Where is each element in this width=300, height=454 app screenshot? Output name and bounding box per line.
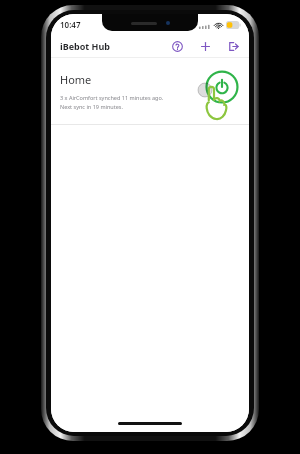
staticText: 10:47 — [60, 19, 81, 30]
button[interactable]: Add — [194, 35, 216, 57]
staticText: iBebot Hub — [60, 40, 111, 52]
staticText: Next sync in 19 minutes. — [60, 103, 123, 110]
staticText: Home — [60, 72, 92, 87]
button[interactable]: Help — [166, 35, 188, 57]
button[interactable]: Power — [204, 69, 240, 105]
button[interactable]: Log out — [222, 35, 244, 57]
staticText: 3 x AirComfort synched 11 minutes ago. — [60, 94, 164, 101]
